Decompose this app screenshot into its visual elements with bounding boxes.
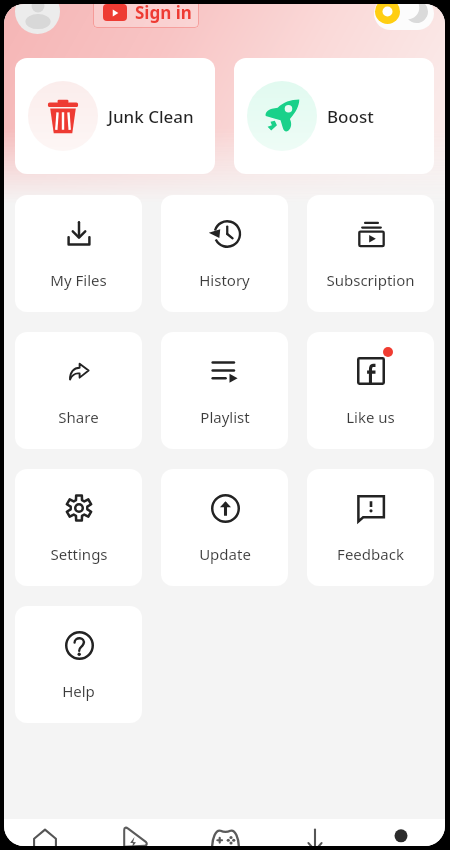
staticText: My Files [50, 270, 107, 290]
staticText: Settings [50, 544, 108, 564]
staticText: Share [58, 407, 99, 427]
button[interactable]: Games [180, 819, 270, 846]
button[interactable]: Theme toggle [374, 4, 434, 30]
button[interactable]: Help [15, 606, 142, 723]
button[interactable]: Playlist [161, 332, 288, 449]
button[interactable]: Update [161, 469, 288, 586]
button[interactable]: Library [360, 819, 441, 846]
button[interactable]: Subscription [307, 195, 434, 312]
button[interactable]: My Files [15, 195, 142, 312]
button[interactable]: Downloads [270, 819, 360, 846]
button[interactable]: Feedback [307, 469, 434, 586]
staticText: Feedback [337, 544, 404, 564]
staticText: Subscription [326, 270, 415, 290]
button[interactable]: Account [15, 4, 60, 34]
staticText: Help [62, 681, 95, 701]
button[interactable]: Sign in [93, 4, 199, 28]
staticText: History [199, 270, 250, 290]
staticText: Boost [327, 105, 374, 128]
staticText: Sign in [135, 4, 192, 24]
button[interactable]: Boost [234, 58, 434, 174]
button[interactable]: Home [4, 819, 90, 846]
button[interactable]: History [161, 195, 288, 312]
staticText: Junk Clean [108, 105, 194, 128]
button[interactable]: Settings [15, 469, 142, 586]
button[interactable]: Junk Clean [15, 58, 215, 174]
staticText: Update [199, 544, 251, 564]
button[interactable]: Share [15, 332, 142, 449]
button[interactable]: Like us [307, 332, 434, 449]
staticText: Like us [346, 407, 395, 427]
button[interactable]: Shorts [90, 819, 180, 846]
staticText: Playlist [200, 407, 250, 427]
